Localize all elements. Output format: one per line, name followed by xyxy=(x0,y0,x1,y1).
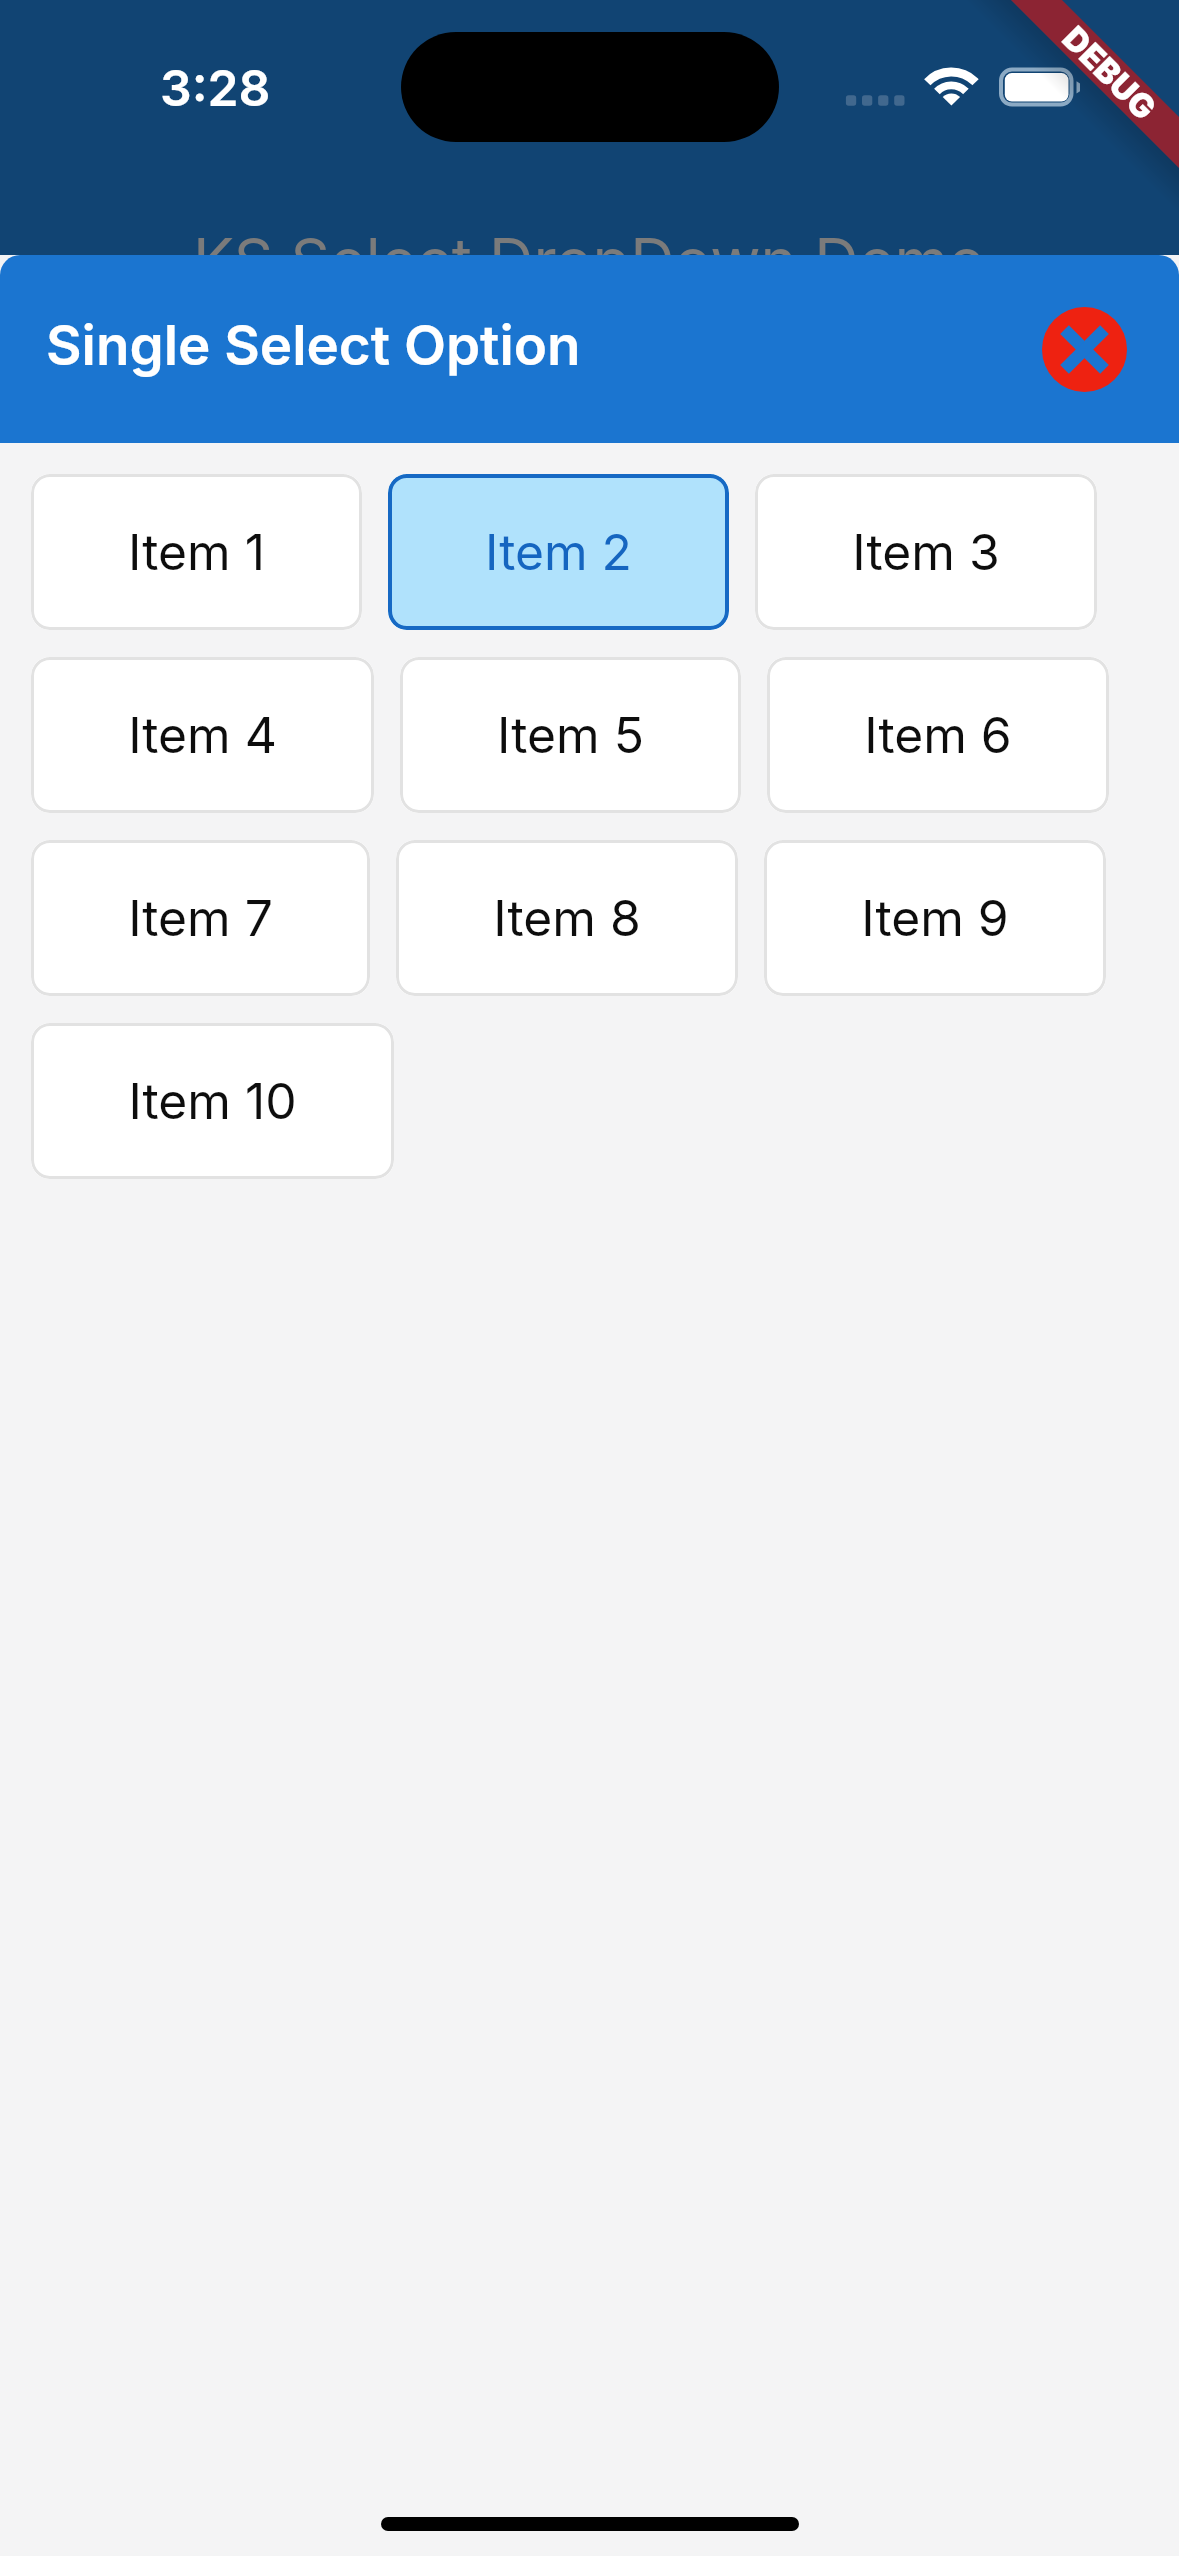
button[interactable]: Item 5 xyxy=(400,657,741,813)
button[interactable]: Item 10 xyxy=(31,1023,394,1179)
staticText: Item 6 xyxy=(864,705,1012,765)
staticText: Single Select Option xyxy=(46,312,581,378)
button[interactable]: Item 6 xyxy=(767,657,1109,813)
button[interactable]: Item 7 xyxy=(31,840,370,996)
staticText: Item 7 xyxy=(128,888,273,948)
staticText: Item 5 xyxy=(497,705,644,765)
button[interactable]: Item 8 xyxy=(396,840,738,996)
button[interactable]: Item 9 xyxy=(764,840,1106,996)
staticText: Item 3 xyxy=(852,522,1000,582)
staticText: Item 1 xyxy=(128,522,265,582)
staticText: Item 4 xyxy=(128,705,277,765)
button[interactable]: Item 4 xyxy=(31,657,374,813)
staticText: Item 9 xyxy=(861,888,1009,948)
staticText: Item 10 xyxy=(128,1071,297,1131)
button[interactable]: Item 2 xyxy=(388,474,729,630)
staticText: Item 8 xyxy=(493,888,641,948)
button[interactable]: Item 3 xyxy=(755,474,1097,630)
button[interactable]: Close xyxy=(1042,307,1127,392)
staticText: DEBUG xyxy=(1055,18,1164,128)
staticText: 3:28 xyxy=(160,58,271,118)
staticText: Item 2 xyxy=(485,522,632,582)
staticText: KS Select DropDown Demo xyxy=(193,223,986,297)
button[interactable]: Item 1 xyxy=(31,474,362,630)
